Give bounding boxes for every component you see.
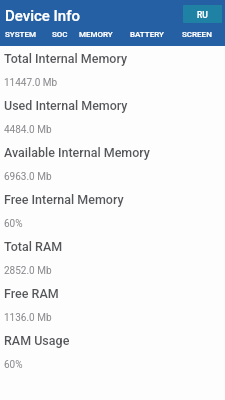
- staticText: Free Internal Memory: [4, 192, 124, 207]
- button[interactable]: Used Internal Memory: [0, 93, 225, 140]
- staticText: 1136.0 Mb: [4, 312, 52, 324]
- button[interactable]: BATTERY: [122, 27, 172, 42]
- staticText: 11447.0 Mb: [4, 77, 58, 89]
- button[interactable]: SCREEN: [174, 27, 220, 42]
- staticText: MEMORY: [79, 30, 113, 39]
- staticText: Used Internal Memory: [4, 98, 128, 113]
- staticText: Free RAM: [4, 286, 59, 301]
- staticText: BATTERY: [130, 30, 164, 39]
- staticText: 60%: [4, 359, 23, 371]
- button[interactable]: Total Internal Memory: [0, 46, 225, 93]
- staticText: 4484.0 Mb: [4, 124, 52, 136]
- staticText: 6963.0 Mb: [4, 171, 52, 183]
- staticText: RAM Usage: [4, 333, 70, 348]
- button[interactable]: SYSTEM: [0, 27, 44, 42]
- button[interactable]: Available Internal Memory: [0, 140, 225, 187]
- staticText: SYSTEM: [5, 30, 36, 39]
- button[interactable]: Free RAM: [0, 281, 225, 328]
- staticText: RU: [197, 10, 208, 20]
- button[interactable]: SOC: [44, 27, 76, 42]
- button[interactable]: Total RAM: [0, 234, 225, 281]
- button[interactable]: RAM Usage: [0, 328, 225, 375]
- staticText: SOC: [52, 30, 68, 39]
- staticText: 2852.0 Mb: [4, 265, 52, 277]
- button[interactable]: MEMORY: [71, 27, 121, 42]
- button[interactable]: Free Internal Memory: [0, 187, 225, 234]
- staticText: Device Info: [5, 7, 80, 25]
- staticText: Total RAM: [4, 239, 63, 254]
- staticText: SCREEN: [182, 30, 212, 39]
- staticText: 60%: [4, 218, 23, 230]
- staticText: Available Internal Memory: [4, 145, 150, 160]
- button[interactable]: RU: [183, 5, 222, 23]
- staticText: Total Internal Memory: [4, 51, 128, 66]
